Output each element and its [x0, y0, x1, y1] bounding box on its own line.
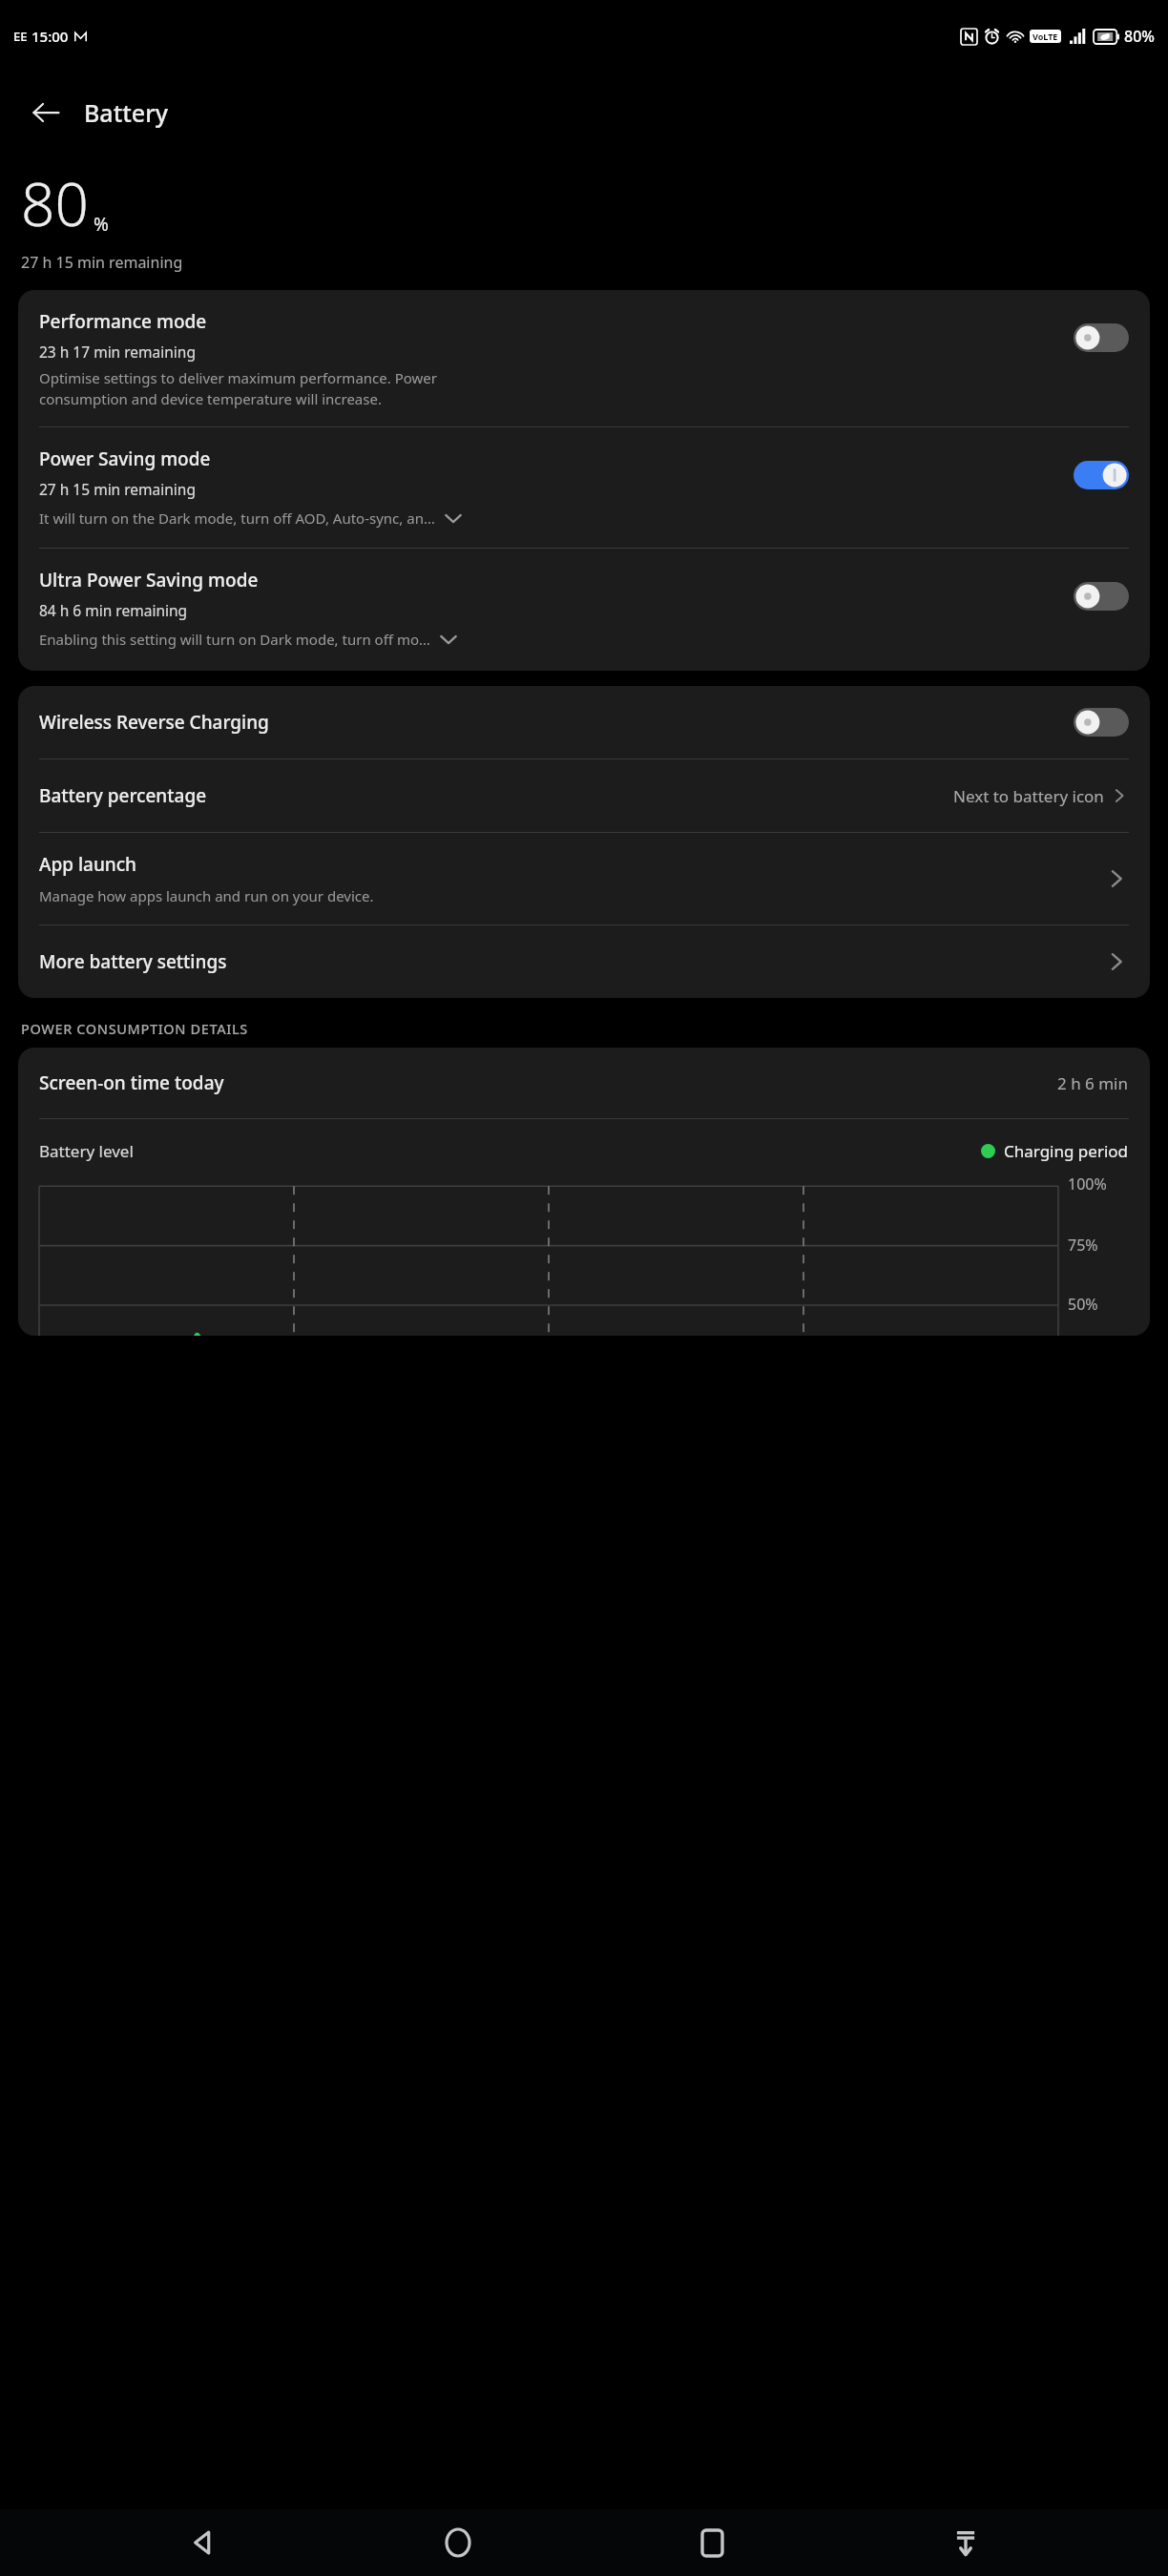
- staticText: 75%: [1068, 1235, 1098, 1256]
- staticText: 15:00: [31, 27, 69, 46]
- button[interactable]: Performance mode: [39, 290, 1129, 426]
- button[interactable]: Back: [19, 86, 73, 139]
- staticText: Next to battery icon: [953, 785, 1104, 807]
- staticText: Optimise settings to deliver maximum per…: [39, 368, 437, 409]
- button[interactable]: Power Saving mode: [39, 427, 1129, 548]
- staticText: Battery level: [39, 1140, 981, 1162]
- button[interactable]: Wireless Reverse Charging toggle: [1074, 707, 1129, 737]
- staticText: Screen-on time today: [39, 1070, 1057, 1095]
- staticText: POWER CONSUMPTION DETAILS: [21, 1019, 248, 1038]
- staticText: Ultra Power Saving mode: [39, 568, 259, 592]
- button[interactable]: Back: [171, 2510, 236, 2575]
- staticText: More battery settings: [39, 949, 1104, 974]
- button[interactable]: More battery settings: [39, 925, 1129, 998]
- staticText: Power Saving mode: [39, 447, 211, 471]
- staticText: Enabling this setting will turn on Dark …: [39, 630, 430, 649]
- button[interactable]: App launch: [39, 833, 1129, 924]
- staticText: It will turn on the Dark mode, turn off …: [39, 509, 435, 528]
- button[interactable]: Hide navigation bar: [933, 2510, 998, 2575]
- staticText: 27 h 15 min remaining: [39, 479, 196, 499]
- button[interactable]: Ultra Power Saving mode: [39, 549, 1129, 671]
- staticText: 2 h 6 min: [1057, 1072, 1129, 1094]
- staticText: 80%: [1124, 26, 1155, 47]
- staticText: 23 h 17 min remaining: [39, 342, 196, 362]
- staticText: Manage how apps launch and run on your d…: [39, 886, 374, 905]
- button[interactable]: Ultra Power Saving mode toggle: [1074, 581, 1129, 612]
- button[interactable]: Recents: [679, 2510, 744, 2575]
- button[interactable]: Screen-on time today: [18, 1048, 1150, 1118]
- button[interactable]: Battery percentage: [39, 759, 1129, 832]
- staticText: 100%: [1068, 1174, 1107, 1195]
- button[interactable]: Wireless Reverse Charging: [39, 686, 1129, 758]
- button[interactable]: Power Saving mode toggle: [1074, 460, 1129, 490]
- staticText: 84 h 6 min remaining: [39, 600, 188, 620]
- staticText: Wireless Reverse Charging: [39, 710, 1074, 735]
- staticText: Battery percentage: [39, 783, 953, 808]
- staticText: 27 h 15 min remaining: [21, 252, 183, 273]
- staticText: 50%: [1068, 1294, 1098, 1315]
- staticText: App launch: [39, 852, 137, 877]
- button[interactable]: Performance mode toggle: [1074, 322, 1129, 353]
- staticText: Battery: [84, 96, 168, 129]
- staticText: VoLTE: [1032, 31, 1058, 42]
- button[interactable]: Home: [426, 2510, 490, 2575]
- staticText: Charging period: [1004, 1140, 1129, 1162]
- staticText: EE: [13, 28, 28, 45]
- staticText: %: [94, 212, 109, 237]
- staticText: 80: [21, 163, 89, 243]
- staticText: Performance mode: [39, 309, 207, 334]
